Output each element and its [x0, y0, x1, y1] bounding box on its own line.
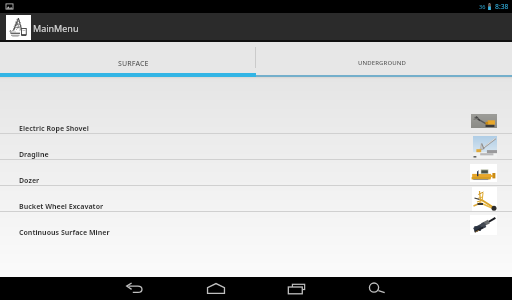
button[interactable]: Dragline: [0, 134, 512, 160]
staticText: Continuous Surface Miner: [19, 228, 110, 238]
staticText: Electric Rope Shovel: [19, 124, 89, 134]
staticText: MainMenu: [33, 22, 79, 34]
button[interactable]: Search: [364, 279, 389, 298]
button[interactable]: Back: [122, 279, 147, 298]
staticText: Dragline: [19, 150, 49, 160]
staticText: 8:38: [495, 2, 509, 11]
button[interactable]: Continuous Surface Miner: [0, 212, 512, 238]
staticText: 36: [479, 3, 486, 11]
staticText: SURFACE: [118, 59, 149, 69]
button[interactable]: Bucket Wheel Excavator: [0, 186, 512, 212]
button[interactable]: Home: [203, 278, 228, 299]
button[interactable]: Recent apps: [284, 279, 309, 298]
button[interactable]: Electric Rope Shovel: [0, 108, 512, 134]
button[interactable]: SURFACE: [0, 42, 256, 73]
staticText: Dozer: [19, 176, 40, 186]
button[interactable]: UNDERGROUND: [256, 42, 512, 73]
staticText: Bucket Wheel Excavator: [19, 202, 104, 212]
button[interactable]: Dozer: [0, 160, 512, 186]
staticText: UNDERGROUND: [358, 59, 407, 67]
button[interactable]: MainMenu: [0, 13, 87, 42]
